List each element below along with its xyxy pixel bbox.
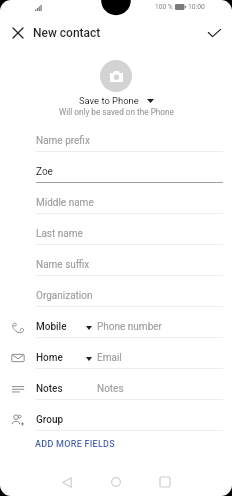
button[interactable]: Last name xyxy=(0,214,232,245)
button[interactable]: Email type xyxy=(81,352,97,366)
staticText: 100 % xyxy=(155,3,173,11)
staticText: Mobile xyxy=(36,321,67,333)
button[interactable]: Recents xyxy=(150,467,180,496)
staticText: Organization xyxy=(36,290,93,302)
button[interactable]: Close xyxy=(6,21,30,45)
button[interactable]: Save to Phone xyxy=(75,94,158,107)
staticText: Will only be saved on the Phone xyxy=(59,107,174,117)
staticText: New contact xyxy=(33,26,101,40)
staticText: Save to Phone xyxy=(79,95,139,106)
button[interactable]: Middle name xyxy=(0,183,232,214)
button[interactable]: Group xyxy=(0,400,232,431)
button[interactable]: Mobile xyxy=(0,307,232,338)
staticText: Last name xyxy=(36,228,83,240)
staticText: Name prefix xyxy=(36,135,90,147)
button[interactable]: ADD MORE FIELDS xyxy=(0,431,232,458)
button[interactable]: Home xyxy=(101,467,131,496)
staticText: ADD MORE FIELDS xyxy=(35,439,115,450)
button[interactable]: Phone type xyxy=(81,321,97,335)
button[interactable]: Back xyxy=(52,467,82,496)
button[interactable]: Name suffix xyxy=(0,245,232,276)
staticText: Name suffix xyxy=(36,259,90,271)
button[interactable]: Home xyxy=(0,338,232,369)
staticText: Zoe xyxy=(36,166,53,178)
button[interactable]: Save xyxy=(202,21,226,45)
staticText: Middle name xyxy=(36,197,94,209)
button[interactable]: Name prefix xyxy=(0,121,232,152)
staticText: Group xyxy=(36,414,64,426)
button[interactable]: Notes xyxy=(0,369,232,400)
staticText: Notes xyxy=(97,383,124,395)
staticText: Email xyxy=(97,352,122,364)
staticText: Phone number xyxy=(97,321,162,333)
staticText: Notes xyxy=(36,383,63,395)
button[interactable]: Zoe xyxy=(0,152,232,183)
button[interactable]: Organization xyxy=(0,276,232,307)
staticText: 10:00 xyxy=(188,3,205,11)
staticText: Home xyxy=(36,352,63,364)
button[interactable]: Add photo xyxy=(100,60,132,92)
